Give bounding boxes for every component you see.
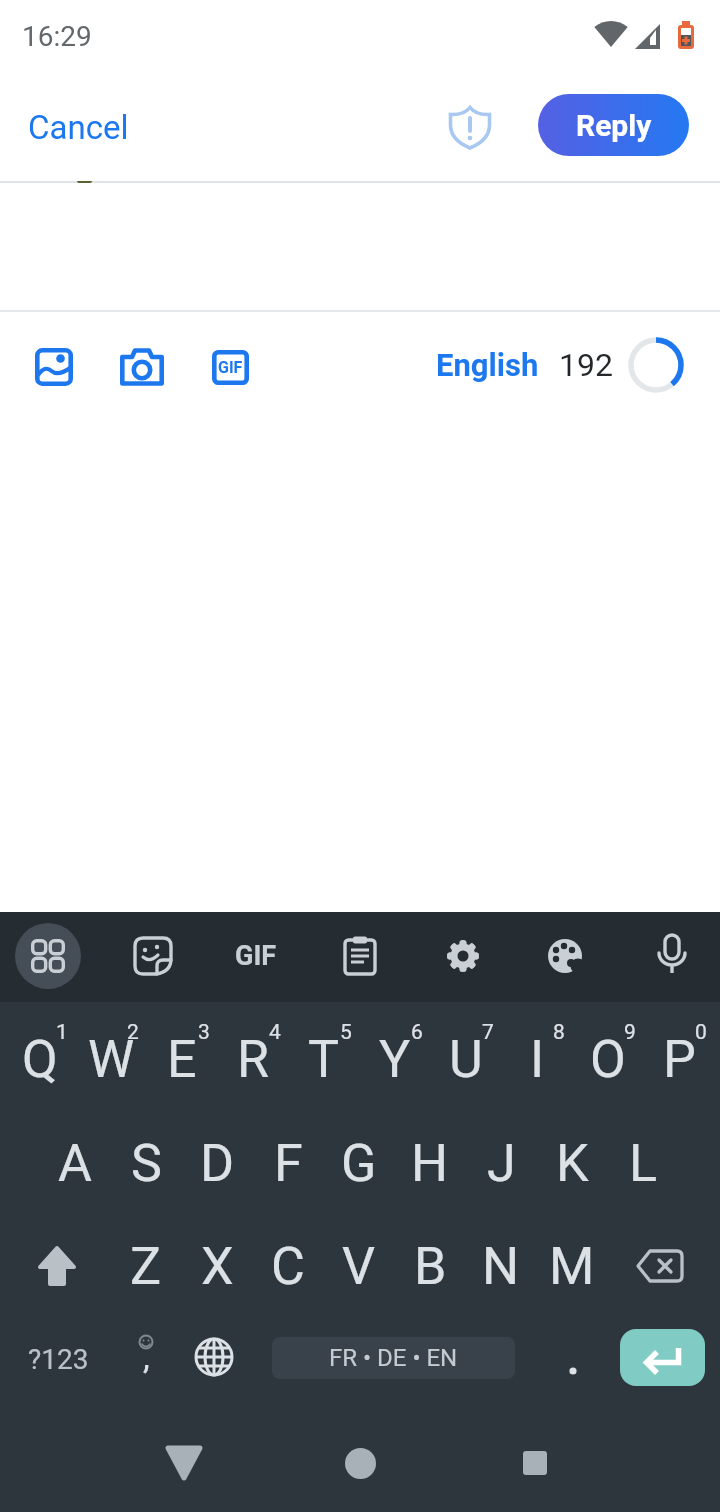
staticText: W	[88, 1029, 135, 1090]
staticText: B	[414, 1236, 447, 1297]
button[interactable]	[24, 337, 84, 397]
button[interactable]	[620, 1329, 705, 1386]
staticText: G	[341, 1133, 377, 1194]
staticText: 1	[56, 1020, 68, 1045]
button[interactable]	[144, 1423, 224, 1503]
staticText: P	[663, 1029, 696, 1090]
staticText: 8	[553, 1020, 565, 1045]
button[interactable]: G	[324, 1113, 394, 1213]
staticText: 7	[482, 1020, 494, 1045]
button[interactable]: R	[218, 1009, 288, 1109]
button[interactable]	[529, 920, 601, 992]
staticText: 192	[559, 346, 613, 384]
button[interactable]: ,	[110, 1323, 182, 1395]
staticText: 9	[624, 1020, 636, 1045]
button[interactable]	[636, 920, 708, 992]
staticText: Q	[22, 1029, 58, 1090]
button[interactable]: V	[324, 1216, 394, 1316]
staticText: O	[590, 1029, 626, 1090]
staticText: Y	[379, 1029, 411, 1090]
button[interactable]: T	[289, 1009, 359, 1109]
button[interactable]	[117, 920, 189, 992]
button[interactable]: H	[395, 1113, 465, 1213]
staticText: A	[58, 1133, 92, 1194]
button[interactable]: C	[253, 1216, 323, 1316]
button[interactable]: O	[573, 1009, 643, 1109]
button[interactable]	[548, 1343, 598, 1399]
staticText: K	[556, 1133, 589, 1194]
button[interactable]	[624, 1230, 696, 1302]
button[interactable]: U	[431, 1009, 501, 1109]
button[interactable]	[112, 337, 172, 397]
staticText: E	[167, 1029, 197, 1090]
staticText: 4	[269, 1020, 281, 1045]
button[interactable]	[12, 920, 84, 992]
button[interactable]: D	[182, 1113, 252, 1213]
button[interactable]: ?123	[13, 1329, 103, 1389]
button[interactable]: Q	[5, 1009, 75, 1109]
staticText: U	[449, 1029, 483, 1090]
staticText: 3	[198, 1020, 210, 1045]
button[interactable]: GIF	[200, 337, 260, 397]
button[interactable]: F	[253, 1113, 323, 1213]
staticText: ,	[143, 1337, 150, 1377]
staticText: 6	[411, 1020, 423, 1045]
button[interactable]: Cancel	[0, 97, 158, 157]
staticText: S	[131, 1133, 162, 1194]
staticText: 0	[695, 1020, 707, 1045]
staticText: Reply	[576, 108, 652, 143]
button[interactable]: E	[147, 1009, 217, 1109]
button[interactable]: L	[608, 1113, 678, 1213]
button[interactable]: M	[537, 1216, 607, 1316]
button[interactable]: GIF	[220, 920, 292, 992]
button[interactable]	[178, 1321, 250, 1393]
staticText: X	[201, 1236, 234, 1297]
staticText: English	[436, 347, 539, 383]
button[interactable]	[324, 920, 396, 992]
staticText: R	[237, 1029, 270, 1090]
button[interactable]: I	[502, 1009, 572, 1109]
staticText: N	[482, 1236, 520, 1297]
staticText: ?123	[28, 1343, 89, 1376]
staticText: L	[629, 1133, 658, 1194]
staticText: GIF	[235, 940, 277, 972]
staticText: H	[411, 1133, 449, 1194]
staticText: F	[274, 1133, 303, 1194]
button[interactable]: English	[407, 337, 567, 393]
staticText: D	[200, 1133, 235, 1194]
staticText: FR • DE • EN	[329, 1344, 458, 1372]
staticText: V	[342, 1236, 376, 1297]
button[interactable]: N	[466, 1216, 536, 1316]
staticText: T	[308, 1029, 340, 1090]
button[interactable]: Z	[111, 1216, 181, 1316]
staticText: 5	[340, 1020, 352, 1045]
button[interactable]: A	[40, 1113, 110, 1213]
button[interactable]: W	[76, 1009, 146, 1109]
staticText: Cancel	[28, 108, 129, 147]
button[interactable]: B	[395, 1216, 465, 1316]
button[interactable]	[440, 97, 500, 157]
button[interactable]: S	[111, 1113, 181, 1213]
staticText: 16:29	[22, 20, 92, 53]
staticText: 2	[127, 1020, 139, 1045]
button[interactable]: Reply	[538, 94, 689, 156]
button[interactable]: FR • DE • EN	[272, 1337, 515, 1379]
button[interactable]: K	[537, 1113, 607, 1213]
staticText: J	[487, 1133, 516, 1194]
staticText: M	[549, 1236, 595, 1297]
staticText: Z	[130, 1236, 162, 1297]
button[interactable]	[320, 1423, 400, 1503]
button[interactable]	[21, 1230, 93, 1302]
button[interactable]: P	[644, 1009, 714, 1109]
staticText: C	[271, 1236, 305, 1297]
staticText: I	[530, 1029, 545, 1090]
button[interactable]	[427, 920, 499, 992]
button[interactable]: J	[466, 1113, 536, 1213]
button[interactable]	[495, 1423, 575, 1503]
button[interactable]: Y	[360, 1009, 430, 1109]
staticText: GIF	[218, 358, 243, 377]
button[interactable]: X	[182, 1216, 252, 1316]
